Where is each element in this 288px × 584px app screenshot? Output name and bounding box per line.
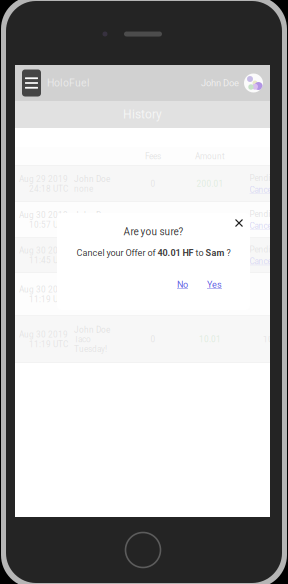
staticText: John Doe (74, 246, 110, 255)
button[interactable]: Close (231, 215, 247, 231)
staticText: Pending (249, 245, 280, 254)
staticText: 10:57 UTC (29, 220, 68, 230)
button[interactable]: Cancel (249, 256, 273, 266)
staticText: 0 (150, 179, 155, 189)
staticText: 0 (150, 251, 155, 260)
staticText: Cancel (249, 185, 273, 195)
button[interactable]: John Doe (201, 73, 263, 92)
staticText: No (177, 279, 188, 290)
staticText: Aug 29 2019 (19, 174, 68, 184)
staticText: Cancel (249, 221, 273, 231)
staticText: Yes (207, 279, 222, 290)
staticText: Taco Tuesday! (74, 335, 107, 354)
staticText: 11:19 UTC (29, 339, 68, 349)
staticText: Aug 30 2019 (19, 210, 68, 220)
staticText: Fees (145, 152, 161, 161)
staticText: John Doe (74, 210, 110, 220)
staticText: Aug 30 2019 (19, 330, 68, 339)
staticText: Are you sure? (123, 226, 183, 238)
staticText: HoloFuel (47, 77, 90, 89)
staticText: History (123, 107, 162, 122)
staticText: John Doe (74, 325, 110, 335)
staticText: 11:45 UTC (29, 255, 68, 265)
staticText: 11:19 UTC (29, 294, 68, 304)
button[interactable]: No (177, 279, 188, 290)
staticText: 10.01 (199, 251, 221, 260)
button[interactable]: Cancel (249, 221, 273, 231)
staticText: Pending (249, 173, 280, 183)
staticText: 200.01 (196, 179, 223, 189)
staticText: Aug 30 2019 (19, 246, 68, 255)
button[interactable]: Menu (22, 69, 41, 96)
staticText: 10.01 (263, 335, 285, 344)
button[interactable]: Yes (207, 279, 222, 290)
staticText: Cancel (249, 256, 273, 266)
staticText: Pending (249, 209, 280, 219)
button[interactable]: Cancel (249, 185, 273, 195)
staticText: John Doe (74, 174, 110, 184)
staticText: Amount (195, 152, 225, 161)
staticText: 0 (150, 335, 155, 344)
staticText: none (74, 184, 93, 194)
staticText: 10.01 (199, 335, 221, 344)
staticText: 24:18 UTC (29, 184, 68, 194)
staticText: Cancel your Offer of 40.01 HF to Sam ? (76, 248, 230, 258)
staticText: Aug 30 2019 (19, 285, 68, 294)
staticText: John Doe (201, 77, 239, 88)
